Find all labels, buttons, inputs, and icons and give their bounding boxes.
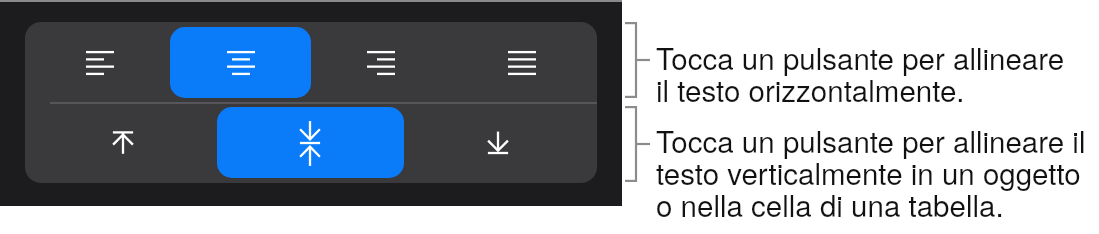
button[interactable]: Align top <box>93 114 153 174</box>
button[interactable]: Align bottom <box>468 113 528 173</box>
button[interactable]: Align left <box>76 39 124 87</box>
button[interactable]: Align center <box>170 27 311 98</box>
staticText: Tocca un pulsante per allineare il testo… <box>656 127 1086 223</box>
staticText: Tocca un pulsante per allineare il testo… <box>656 44 1065 108</box>
button[interactable]: Align center <box>217 39 265 87</box>
button[interactable]: Align middle <box>280 113 340 173</box>
button[interactable]: Align right <box>357 39 405 87</box>
button[interactable]: Align middle <box>217 107 404 178</box>
button[interactable]: Justify <box>498 39 546 87</box>
